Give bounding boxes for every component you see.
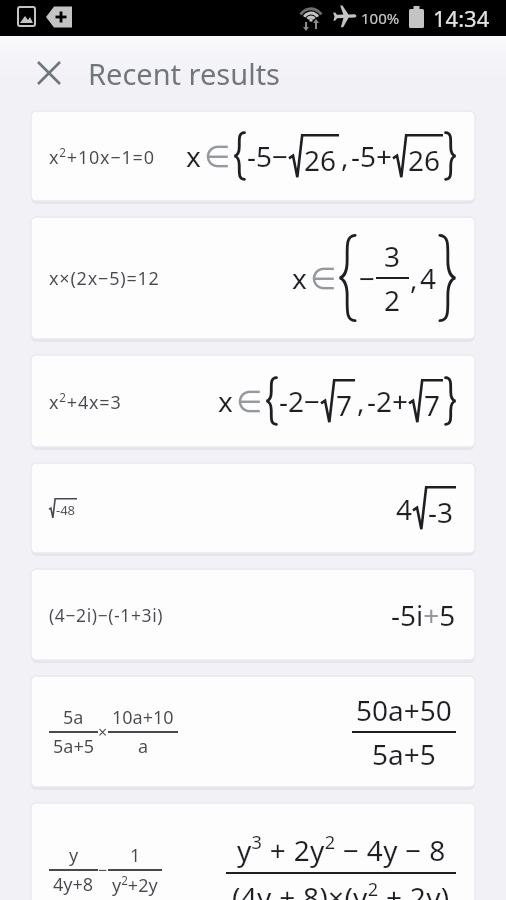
staticText: ∈ <box>310 261 337 296</box>
staticText: 5a+5 <box>372 735 436 773</box>
staticText: 7 <box>336 386 353 424</box>
staticText: 5a+5 <box>53 734 94 759</box>
staticText: , <box>341 137 349 175</box>
staticText: ∈ <box>236 384 263 419</box>
button[interactable]: x2+4x=3 <box>31 355 475 447</box>
staticText: x2+10x−1=0 <box>49 144 155 169</box>
staticText: -48 <box>56 501 76 519</box>
staticText: 26 <box>304 141 337 179</box>
staticText: -5− <box>247 137 289 175</box>
staticText: x <box>186 137 201 175</box>
staticText: − <box>359 259 376 297</box>
staticText: (4−2i)−(-1+3i) <box>49 603 164 627</box>
staticText: y3 + 2y2 − 4y − 8 <box>237 830 446 869</box>
button[interactable]: x2+10x−1=0 <box>31 111 475 201</box>
staticText: x2+4x=3 <box>49 389 122 414</box>
staticText: 4 <box>420 259 437 297</box>
staticText: 5a <box>63 705 84 730</box>
staticText: -5i+5 <box>391 596 456 634</box>
staticText: × <box>98 721 108 743</box>
staticText: 4 <box>396 490 413 528</box>
button[interactable]: y <box>31 803 475 900</box>
button[interactable]: x×(2x−5)=12 <box>31 217 475 339</box>
staticText: , <box>410 259 418 297</box>
button[interactable]: 5a <box>31 676 475 787</box>
staticText: -2+ <box>367 382 409 420</box>
staticText: , <box>357 382 365 420</box>
staticText: y2+2y <box>112 872 158 897</box>
staticText: 7 <box>424 386 441 424</box>
staticText: 14:34 <box>433 3 490 33</box>
staticText: (4y + 8)×(y2 + 2y) <box>232 877 450 900</box>
staticText: x×(2x−5)=12 <box>49 266 160 291</box>
staticText: 1 <box>130 843 141 868</box>
button[interactable]: (4−2i)−(-1+3i) <box>31 569 475 660</box>
staticText: x <box>292 259 307 297</box>
staticText: y <box>69 843 79 868</box>
staticText: 3 <box>384 237 401 275</box>
staticText: 50a+50 <box>356 691 452 729</box>
staticText: ∈ <box>204 139 231 174</box>
staticText: 100% <box>361 8 400 28</box>
button[interactable]: -48 <box>31 463 475 553</box>
staticText: − <box>98 859 108 881</box>
staticText: 10a+10 <box>112 705 174 730</box>
staticText: a <box>138 734 149 759</box>
staticText: -2− <box>279 382 321 420</box>
staticText: 2 <box>384 281 401 319</box>
staticText: x <box>218 382 233 420</box>
button[interactable] <box>35 59 63 87</box>
staticText: 4y+8 <box>53 872 94 897</box>
staticText: 26 <box>408 141 441 179</box>
staticText: Recent results <box>88 54 281 93</box>
staticText: -5+ <box>351 137 393 175</box>
staticText: -3 <box>428 493 454 531</box>
